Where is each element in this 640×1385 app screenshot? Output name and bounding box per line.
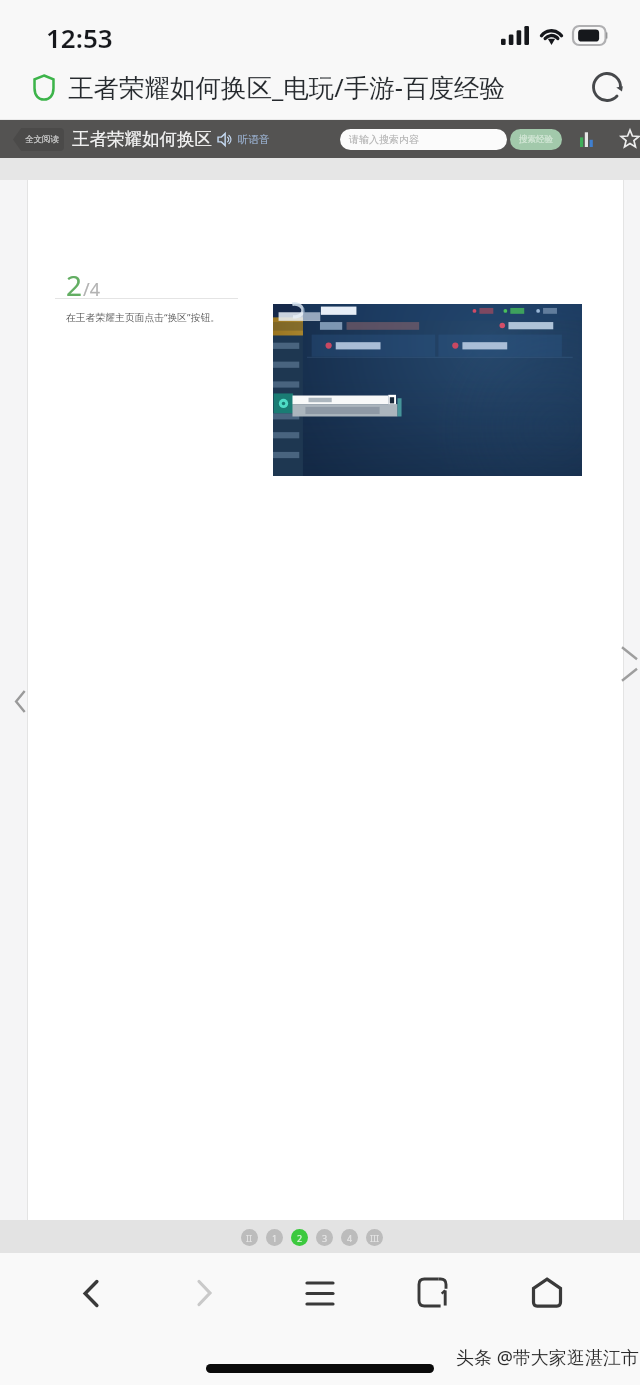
staticText: III xyxy=(370,1232,380,1244)
button[interactable]: II xyxy=(241,1229,258,1246)
button[interactable]: 搜索经验 xyxy=(510,129,562,150)
button[interactable]: 请输入搜索内容 xyxy=(340,129,507,150)
button[interactable]: 1 xyxy=(266,1229,283,1246)
staticText: /4 xyxy=(83,277,100,302)
staticText: 王者荣耀如何换区 xyxy=(72,128,212,150)
staticText: 12:53 xyxy=(46,20,113,55)
button[interactable]: III xyxy=(366,1229,383,1246)
staticText: 搜索经验 xyxy=(519,134,553,145)
staticText: 3 xyxy=(322,1232,328,1244)
staticText: 头条 @带大家逛湛江市 xyxy=(456,1345,639,1370)
button[interactable]: Refresh xyxy=(588,68,626,106)
button[interactable]: 3 xyxy=(316,1229,333,1246)
button[interactable]: 4 xyxy=(341,1229,358,1246)
staticText: 2 xyxy=(297,1232,303,1244)
button[interactable]: Next page xyxy=(618,634,638,694)
button[interactable]: Secure connection xyxy=(33,74,55,101)
button[interactable]: Menu xyxy=(280,1263,360,1323)
staticText: 请输入搜索内容 xyxy=(349,133,419,146)
button[interactable]: Statistics xyxy=(580,131,596,147)
staticText: 在王者荣耀主页面点击“换区”按钮。 xyxy=(66,311,220,324)
button[interactable]: 全文阅读 xyxy=(13,128,64,151)
button[interactable]: Previous page xyxy=(11,686,29,716)
staticText: 4 xyxy=(347,1232,353,1244)
staticText: 1 xyxy=(272,1232,278,1244)
staticText: II xyxy=(246,1232,253,1244)
button[interactable]: 2 xyxy=(291,1229,308,1246)
button[interactable]: Tabs xyxy=(394,1263,474,1323)
button[interactable]: Home xyxy=(507,1263,587,1323)
button[interactable]: Add to favorites xyxy=(620,129,640,149)
staticText: 王者荣耀如何换区_电玩/手游-百度经验 xyxy=(68,70,506,105)
button[interactable]: Listen to article xyxy=(217,131,234,148)
button[interactable]: Forward xyxy=(164,1263,244,1323)
staticText: 全文阅读 xyxy=(25,134,59,145)
staticText: 2 xyxy=(66,266,83,304)
staticText: 听语音 xyxy=(238,133,270,146)
button[interactable]: Back xyxy=(51,1263,131,1323)
